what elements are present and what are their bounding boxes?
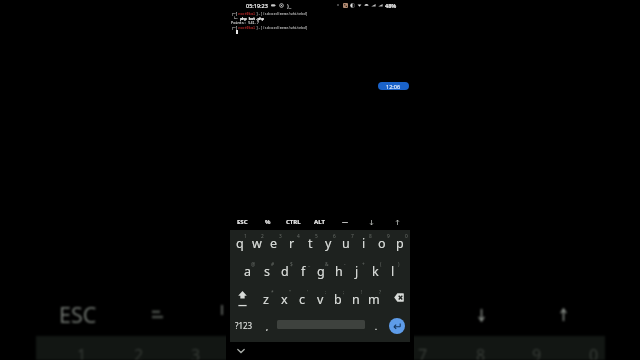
staticText: l	[391, 263, 395, 280]
button[interactable]: $	[276, 258, 294, 286]
staticText: 5	[315, 233, 318, 240]
button[interactable]: -	[330, 258, 348, 286]
staticText: 8	[476, 344, 486, 360]
staticText: t	[308, 235, 313, 252]
staticText: 3	[279, 233, 282, 240]
staticText: x	[281, 291, 288, 308]
button[interactable]: @	[238, 258, 257, 286]
staticText: 1	[77, 344, 87, 360]
staticText: v	[317, 291, 324, 308]
staticText: ALT	[314, 218, 325, 226]
staticText: 8	[369, 233, 372, 240]
button[interactable]: 7	[337, 230, 355, 258]
button[interactable]: ,	[256, 314, 277, 342]
staticText: *	[271, 289, 274, 296]
button[interactable]: #	[257, 258, 276, 286]
staticText: ESC	[237, 218, 248, 226]
staticText: i	[362, 235, 366, 252]
button[interactable]: *	[257, 286, 275, 314]
staticText: d	[281, 263, 289, 280]
button[interactable]: Arrow down	[358, 214, 384, 230]
button[interactable]: Backspace	[383, 286, 409, 314]
staticText: )	[398, 261, 400, 268]
button[interactable]: :	[311, 286, 329, 314]
staticText: 2	[134, 344, 144, 360]
button[interactable]: 1	[231, 230, 248, 258]
button[interactable]: 5	[301, 230, 319, 258]
staticText: m	[368, 291, 380, 308]
button[interactable]: 2	[248, 230, 265, 258]
button[interactable]: 3	[265, 230, 283, 258]
staticText: 1	[244, 233, 247, 240]
staticText: r	[289, 235, 295, 252]
staticText: %	[265, 218, 271, 226]
button[interactable]: 0	[391, 230, 409, 258]
staticText: -	[344, 261, 346, 268]
staticText: 4	[297, 233, 300, 240]
button[interactable]: %	[255, 214, 280, 230]
button[interactable]: ;	[329, 286, 347, 314]
button[interactable]: '	[293, 286, 311, 314]
button[interactable]: 8	[355, 230, 373, 258]
staticText: y	[325, 235, 332, 252]
button[interactable]: )	[384, 258, 402, 286]
staticText: n	[352, 291, 360, 308]
button[interactable]: ALT	[306, 214, 332, 230]
staticText: ?123	[235, 320, 253, 331]
staticText: "	[289, 289, 291, 296]
staticText: 05:19:23	[246, 2, 268, 9]
staticText: #	[271, 261, 275, 268]
staticText: 9	[387, 233, 390, 240]
staticText: 7	[418, 344, 428, 360]
staticText: !	[361, 289, 363, 296]
staticText: 9	[532, 344, 542, 360]
button[interactable]: &	[312, 258, 330, 286]
staticText: )_	[287, 2, 292, 9]
button[interactable]: ?	[365, 286, 383, 314]
staticText: s	[264, 263, 270, 280]
staticText: ┌─[	[231, 25, 238, 30]
button[interactable]: 12:06	[378, 82, 409, 90]
button[interactable]: !	[347, 286, 365, 314]
staticText: ESC	[59, 300, 97, 329]
button[interactable]: ESC	[230, 214, 255, 230]
staticText: —	[342, 218, 349, 226]
staticText: CTRL	[286, 218, 301, 226]
button[interactable]: Arrow up	[384, 214, 410, 230]
staticText: 0	[405, 233, 408, 240]
staticText: ?	[379, 289, 382, 296]
staticText: ;	[343, 289, 345, 296]
button[interactable]: Shift	[231, 286, 257, 314]
staticText: root@kal	[238, 25, 256, 30]
button[interactable]: 6	[319, 230, 337, 258]
button[interactable]: —	[332, 214, 358, 230]
staticText: j	[355, 263, 359, 280]
staticText: _	[308, 261, 311, 268]
staticText: u	[342, 235, 350, 252]
button[interactable]: Enter	[384, 314, 409, 342]
button[interactable]: 9	[373, 230, 391, 258]
button[interactable]: .	[368, 314, 384, 342]
staticText: 12:06	[386, 83, 401, 90]
button[interactable]: ?123	[231, 314, 256, 342]
button[interactable]: _	[294, 258, 312, 286]
button[interactable]	[277, 314, 368, 342]
staticText: p	[396, 235, 404, 252]
button[interactable]: (	[366, 258, 384, 286]
button[interactable]: CTRL	[280, 214, 306, 230]
staticText: 2	[261, 233, 264, 240]
other: Hide keyboard	[237, 348, 245, 354]
staticText: 7	[351, 233, 354, 240]
staticText: &	[325, 261, 329, 268]
button[interactable]: 4	[283, 230, 301, 258]
button[interactable]: +	[348, 258, 366, 286]
staticText: $	[290, 261, 293, 268]
staticText: h	[335, 263, 343, 280]
staticText: ]-[/sdcard/meme/whitebd]	[256, 25, 308, 30]
button[interactable]: "	[275, 286, 293, 314]
staticText: .	[375, 323, 377, 333]
staticText: Points: 541.7	[231, 20, 260, 25]
staticText: └─	[231, 16, 238, 21]
